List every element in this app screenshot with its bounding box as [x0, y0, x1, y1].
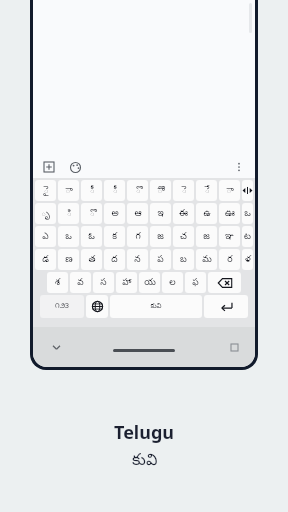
button[interactable]: [242, 180, 253, 201]
button[interactable]: జ: [196, 226, 217, 247]
staticText: ఈ: [179, 208, 188, 220]
button[interactable]: ట: [242, 226, 253, 247]
staticText: డ: [42, 254, 49, 266]
staticText: ళ: [245, 254, 251, 266]
button[interactable]: ఉ: [196, 203, 217, 224]
button[interactable]: శ: [47, 272, 68, 293]
staticText: ీ: [112, 185, 118, 197]
button[interactable]: ఓ: [81, 226, 102, 247]
button[interactable]: డ: [35, 249, 56, 270]
staticText: ొ: [89, 208, 95, 220]
button[interactable]: More options: [229, 157, 249, 177]
button[interactable]: ీ: [81, 180, 102, 201]
button[interactable]: ఒ: [242, 203, 253, 224]
staticText: ే: [204, 185, 210, 197]
button[interactable]: జ: [150, 226, 171, 247]
button[interactable]: Home: [113, 349, 175, 352]
staticText: జ: [203, 231, 210, 243]
staticText: ఉ: [203, 208, 211, 220]
staticText: ా: [226, 185, 234, 197]
staticText: శ: [55, 277, 60, 289]
staticText: ద: [111, 254, 118, 266]
button[interactable]: ఫ: [185, 272, 206, 293]
button[interactable]: ొ: [127, 180, 148, 201]
staticText: స: [100, 277, 107, 289]
staticText: ృ: [41, 208, 50, 220]
staticText: య: [144, 277, 156, 289]
staticText: ఆ: [134, 208, 142, 220]
staticText: త: [88, 254, 96, 266]
staticText: చ: [180, 231, 187, 243]
button[interactable]: బ: [173, 249, 194, 270]
staticText: న: [134, 254, 141, 266]
button[interactable]: Backspace: [208, 272, 241, 293]
button[interactable]: ౧౨౩: [40, 295, 84, 318]
staticText: మ: [202, 254, 212, 266]
staticText: వ: [77, 277, 84, 289]
staticText: కువి: [150, 302, 162, 311]
staticText: ల: [169, 277, 176, 289]
button[interactable]: ఒ: [58, 226, 79, 247]
button[interactable]: ణ: [58, 249, 79, 270]
staticText: ట: [244, 231, 251, 243]
button[interactable]: ా: [219, 180, 240, 201]
staticText: ర: [227, 254, 233, 266]
button[interactable]: క: [104, 226, 125, 247]
staticText: ై: [43, 185, 49, 197]
staticText: హా: [122, 277, 132, 289]
button[interactable]: వ: [70, 272, 91, 293]
button[interactable]: Theme: [65, 157, 85, 177]
button[interactable]: య: [139, 272, 160, 293]
button[interactable]: ర: [219, 249, 240, 270]
button[interactable]: అ: [104, 203, 125, 224]
button[interactable]: [204, 295, 248, 318]
button[interactable]: గ: [127, 226, 148, 247]
staticText: ౧౨౩: [55, 302, 69, 311]
button[interactable]: త: [81, 249, 102, 270]
button[interactable]: న: [127, 249, 148, 270]
staticText: ొ: [135, 185, 141, 197]
button[interactable]: ఞ: [219, 226, 240, 247]
button[interactable]: స: [93, 272, 114, 293]
button[interactable]: ద: [104, 249, 125, 270]
staticText: ఎ: [42, 231, 49, 243]
button[interactable]: ి: [58, 203, 79, 224]
staticText: ఫ: [192, 277, 199, 289]
staticText: క: [112, 231, 117, 243]
button[interactable]: ృ: [35, 203, 56, 224]
staticText: జ: [157, 231, 164, 243]
button[interactable]: చ: [173, 226, 194, 247]
button[interactable]: ఊ: [219, 203, 240, 224]
button[interactable]: ఎ: [35, 226, 56, 247]
button[interactable]: ే: [196, 180, 217, 201]
staticText: ఞ: [225, 231, 234, 243]
staticText: ీ: [89, 185, 95, 197]
button[interactable]: ై: [35, 180, 56, 201]
button[interactable]: ొ: [81, 203, 102, 224]
button[interactable]: కువి: [110, 295, 202, 318]
button[interactable]: ీ: [104, 180, 125, 201]
button[interactable]: [86, 295, 108, 318]
button[interactable]: ె: [173, 180, 194, 201]
button[interactable]: ఈ: [173, 203, 194, 224]
staticText: కువి: [132, 451, 158, 473]
button[interactable]: ళ: [242, 249, 253, 270]
button[interactable]: హా: [116, 272, 137, 293]
button[interactable]: ా: [58, 180, 79, 201]
staticText: ఊ: [225, 208, 235, 220]
button[interactable]: ల: [162, 272, 183, 293]
staticText: ఓ: [88, 231, 95, 243]
button[interactable]: Recent apps: [227, 340, 241, 354]
button[interactable]: Add: [39, 157, 59, 177]
button[interactable]: ఇ: [150, 203, 171, 224]
staticText: ా: [65, 185, 73, 197]
button[interactable]: మ: [196, 249, 217, 270]
button[interactable]: Back: [49, 340, 63, 354]
staticText: ె: [181, 185, 187, 197]
button[interactable]: ప: [150, 249, 171, 270]
staticText: ఒ: [244, 208, 251, 220]
button[interactable]: ొా: [150, 180, 171, 201]
staticText: ి: [66, 208, 72, 220]
staticText: ఒ: [65, 231, 72, 243]
button[interactable]: ఆ: [127, 203, 148, 224]
